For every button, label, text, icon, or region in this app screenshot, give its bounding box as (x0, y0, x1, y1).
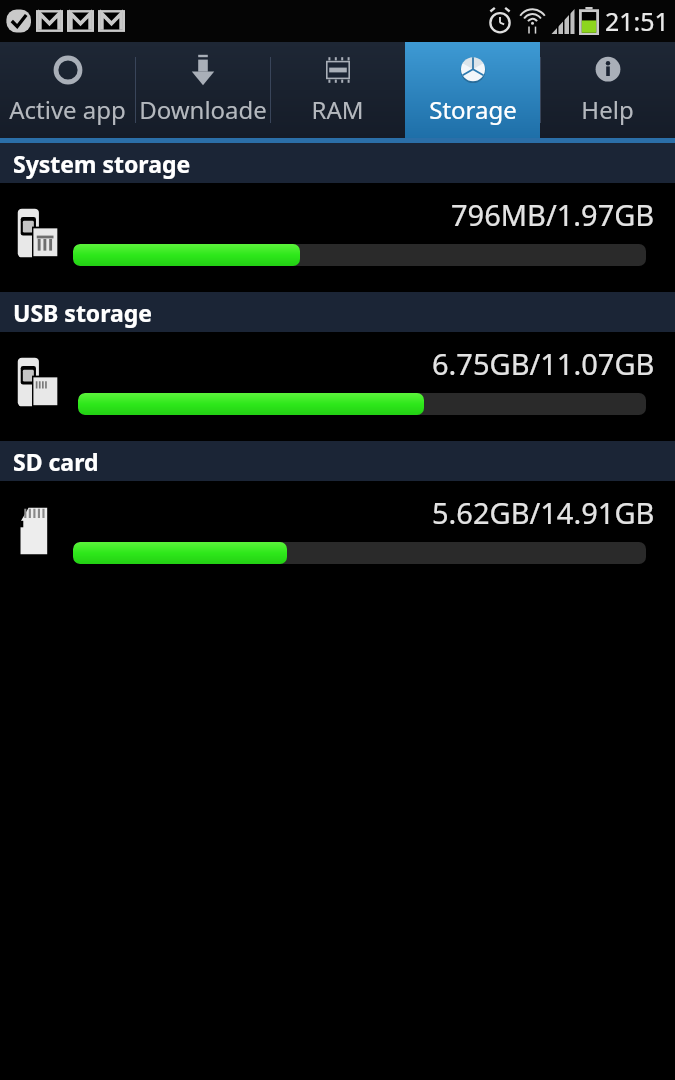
button[interactable]: 796MB/1.97GB (0, 183, 675, 292)
staticText: USB storage (13, 297, 153, 328)
button[interactable]: RAM (270, 42, 405, 138)
button[interactable]: Active app (0, 42, 135, 138)
staticText: System storage (13, 148, 191, 179)
button[interactable]: Downloade (135, 42, 270, 138)
staticText: RAM (311, 93, 364, 126)
button[interactable]: 5.62GB/14.91GB (0, 481, 675, 590)
button[interactable]: Storage (405, 42, 540, 138)
staticText: 6.75GB/11.07GB (432, 344, 655, 383)
button[interactable]: Help (540, 42, 675, 138)
staticText: 5.62GB/14.91GB (432, 493, 655, 532)
staticText: Help (581, 93, 634, 126)
staticText: 21:51 (605, 4, 669, 38)
staticText: Active app (9, 93, 126, 126)
staticText: SD card (13, 446, 99, 477)
staticText: Downloade (139, 93, 267, 126)
staticText: Storage (429, 93, 517, 126)
staticText: 796MB/1.97GB (451, 195, 655, 234)
button[interactable]: 6.75GB/11.07GB (0, 332, 675, 441)
